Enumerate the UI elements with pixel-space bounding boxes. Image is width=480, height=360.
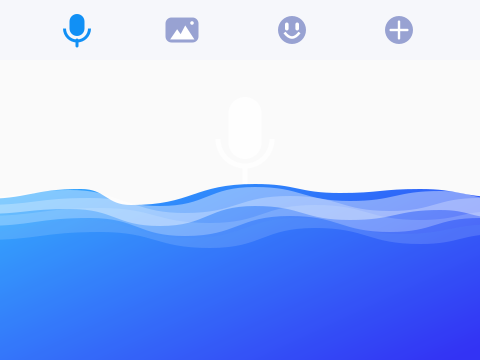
button[interactable]: Photos [162, 10, 202, 50]
button[interactable]: Stickers [272, 10, 312, 50]
button[interactable]: Add [379, 10, 419, 50]
button[interactable]: Voice input [57, 10, 97, 50]
